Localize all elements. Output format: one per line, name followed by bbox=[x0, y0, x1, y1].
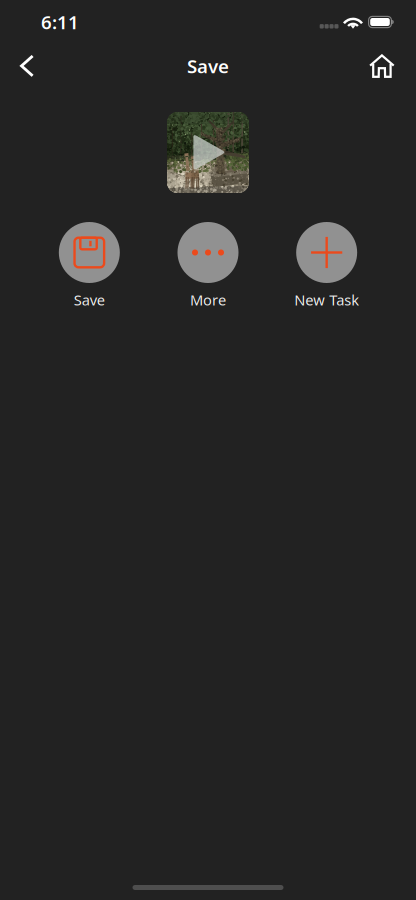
staticText: Save bbox=[187, 54, 229, 78]
button[interactable]: New Task bbox=[267, 222, 386, 309]
button[interactable]: Play video bbox=[167, 112, 249, 193]
button[interactable]: Save bbox=[30, 222, 149, 309]
button[interactable]: Back bbox=[5, 44, 49, 88]
staticText: More bbox=[190, 290, 226, 309]
button[interactable]: Home bbox=[360, 44, 404, 88]
button[interactable]: More bbox=[149, 222, 267, 309]
staticText: Save bbox=[74, 290, 105, 309]
staticText: New Task bbox=[294, 290, 359, 309]
staticText: 6:11 bbox=[41, 10, 79, 34]
